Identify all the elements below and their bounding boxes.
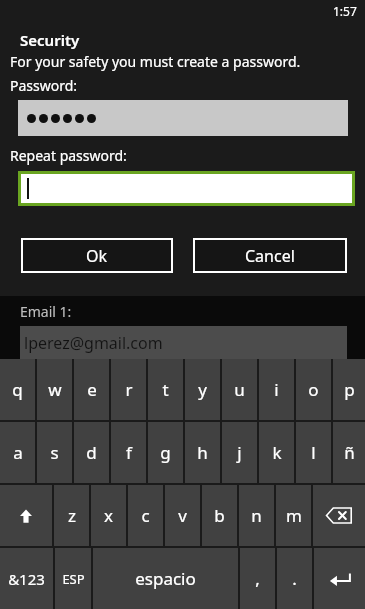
staticText: ,: [255, 567, 260, 590]
staticText: h: [197, 441, 208, 464]
button[interactable]: Backspace: [313, 485, 365, 546]
staticText: &123: [8, 569, 45, 589]
button[interactable]: m: [276, 485, 311, 546]
button[interactable]: ,: [240, 548, 275, 609]
staticText: o: [308, 378, 319, 401]
button[interactable]: d: [74, 422, 109, 483]
staticText: For your safety you must create a passwo…: [10, 52, 301, 71]
button[interactable]: t: [148, 359, 183, 420]
button[interactable]: g: [148, 422, 183, 483]
staticText: k: [272, 441, 282, 464]
button[interactable]: a: [0, 422, 35, 483]
button[interactable]: [21, 174, 352, 203]
staticText: n: [251, 504, 262, 527]
button[interactable]: l: [296, 422, 331, 483]
staticText: ESP: [62, 570, 85, 588]
staticText: i: [274, 378, 279, 401]
staticText: Password:: [10, 76, 78, 95]
button[interactable]: n: [239, 485, 274, 546]
staticText: w: [48, 378, 62, 401]
staticText: espacio: [135, 567, 196, 590]
button[interactable]: Enter: [314, 548, 365, 609]
button[interactable]: s: [37, 422, 72, 483]
button[interactable]: [18, 100, 348, 136]
button[interactable]: h: [185, 422, 220, 483]
button[interactable]: f: [111, 422, 146, 483]
staticText: r: [125, 378, 133, 401]
button[interactable]: ñ: [333, 422, 365, 483]
button[interactable]: Shift: [0, 485, 52, 546]
button[interactable]: r: [111, 359, 146, 420]
staticText: x: [104, 504, 113, 527]
staticText: t: [162, 378, 169, 401]
staticText: Cancel: [245, 245, 295, 267]
staticText: Ok: [86, 245, 108, 267]
button[interactable]: i: [259, 359, 294, 420]
button[interactable]: z: [54, 485, 89, 546]
button[interactable]: j: [222, 422, 257, 483]
staticText: lperez@gmail.com: [24, 332, 163, 354]
button[interactable]: Ok: [23, 240, 171, 271]
button[interactable]: c: [128, 485, 163, 546]
staticText: g: [160, 441, 171, 464]
staticText: Security: [20, 30, 80, 50]
staticText: s: [50, 441, 59, 464]
button[interactable]: v: [165, 485, 200, 546]
staticText: Repeat password:: [10, 146, 127, 165]
button[interactable]: o: [296, 359, 331, 420]
staticText: a: [13, 441, 23, 464]
button[interactable]: espacio: [93, 548, 238, 609]
button[interactable]: ESP: [55, 548, 91, 609]
button[interactable]: Cancel: [195, 240, 345, 271]
staticText: f: [126, 441, 132, 464]
staticText: d: [86, 441, 97, 464]
staticText: 1:57: [333, 3, 357, 19]
staticText: e: [87, 378, 97, 401]
button[interactable]: k: [259, 422, 294, 483]
staticText: j: [237, 441, 242, 464]
staticText: z: [68, 504, 76, 527]
button[interactable]: y: [185, 359, 220, 420]
staticText: c: [141, 504, 150, 527]
button[interactable]: p: [333, 359, 365, 420]
staticText: q: [12, 378, 23, 401]
staticText: Email 1:: [20, 302, 72, 321]
staticText: l: [311, 441, 316, 464]
staticText: m: [286, 504, 302, 527]
button[interactable]: w: [37, 359, 72, 420]
staticText: v: [178, 504, 187, 527]
staticText: y: [198, 378, 207, 401]
staticText: p: [344, 378, 355, 401]
button[interactable]: u: [222, 359, 257, 420]
staticText: ñ: [344, 441, 355, 464]
staticText: .: [292, 567, 297, 590]
button[interactable]: &123: [0, 548, 53, 609]
button[interactable]: e: [74, 359, 109, 420]
staticText: u: [234, 378, 245, 401]
button[interactable]: .: [277, 548, 312, 609]
staticText: b: [214, 504, 225, 527]
button[interactable]: x: [91, 485, 126, 546]
button[interactable]: b: [202, 485, 237, 546]
button[interactable]: q: [0, 359, 35, 420]
